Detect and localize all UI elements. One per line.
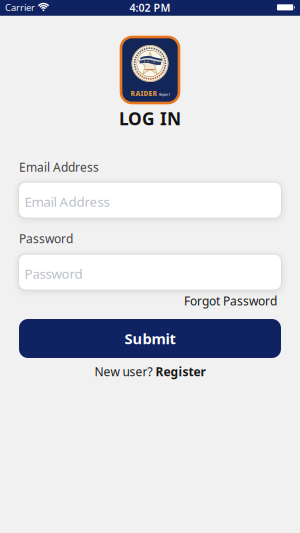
staticText: New user? bbox=[94, 363, 152, 379]
button[interactable]: Submit bbox=[19, 319, 281, 358]
staticText: Submit bbox=[124, 329, 175, 348]
staticText: Email Address bbox=[19, 159, 99, 175]
staticText: Password bbox=[19, 230, 73, 246]
button[interactable]: Forgot Password bbox=[184, 293, 277, 309]
button[interactable]: Password bbox=[18, 254, 281, 290]
staticText: 4:02 PM bbox=[129, 0, 170, 15]
staticText: LOG IN bbox=[119, 107, 181, 130]
staticText: Password bbox=[24, 265, 82, 282]
staticText: Forgot Password bbox=[184, 293, 277, 309]
button[interactable]: New user? bbox=[94, 363, 205, 379]
staticText: Register bbox=[155, 363, 205, 379]
staticText: Report bbox=[158, 92, 169, 97]
button[interactable]: Email Address bbox=[18, 182, 281, 218]
staticText: Email Address bbox=[24, 193, 109, 210]
staticText: Carrier bbox=[5, 1, 35, 14]
staticText: RAIDER bbox=[130, 89, 157, 98]
